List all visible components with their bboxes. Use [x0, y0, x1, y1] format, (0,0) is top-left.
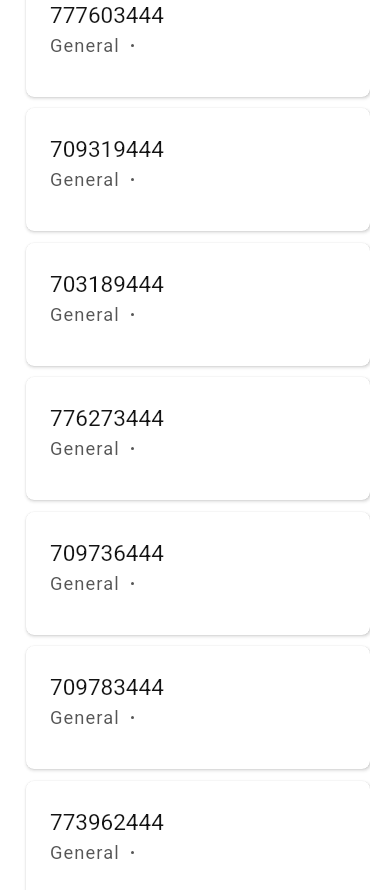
staticText: 776273444 [50, 405, 164, 431]
staticText: 709783444 [50, 674, 164, 700]
staticText: General [50, 842, 120, 863]
staticText: General [50, 438, 120, 459]
button[interactable]: 709736444 [26, 512, 370, 635]
button[interactable]: 703189444 [26, 243, 370, 366]
button[interactable]: 776273444 [26, 377, 370, 500]
staticText: 777603444 [50, 2, 164, 28]
staticText: General [50, 573, 120, 594]
staticText: General [50, 35, 120, 56]
button[interactable]: 709319444 [26, 108, 370, 231]
staticText: General [50, 707, 120, 728]
button[interactable]: 777603444 [26, 0, 370, 97]
staticText: General [50, 304, 120, 325]
staticText: General [50, 169, 120, 190]
staticText: 703189444 [50, 271, 164, 297]
button[interactable]: 709783444 [26, 646, 370, 769]
staticText: 709319444 [50, 136, 164, 162]
button[interactable]: 773962444 [26, 781, 370, 890]
staticText: 773962444 [50, 809, 164, 835]
staticText: 709736444 [50, 540, 164, 566]
